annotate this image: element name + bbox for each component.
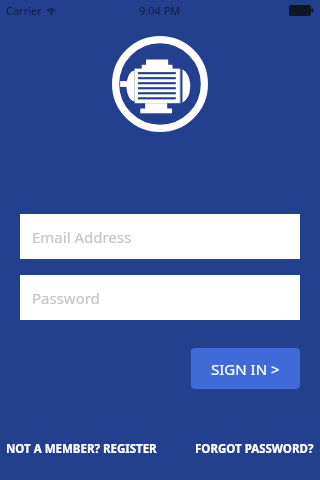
button[interactable]: Email Address [20, 214, 300, 259]
staticText: FORGOT PASSWORD? [195, 441, 314, 457]
staticText: 9:04 PM [139, 3, 181, 18]
staticText: NOT A MEMBER? REGISTER [6, 441, 157, 457]
other: Motor logo [112, 36, 208, 132]
staticText: SIGN IN > [211, 359, 280, 379]
button[interactable]: NOT A MEMBER? REGISTER [0, 437, 161, 461]
staticText: Carrier [6, 3, 42, 18]
staticText: Email Address [32, 227, 132, 247]
button[interactable]: Password [20, 275, 300, 320]
button[interactable]: SIGN IN > [191, 348, 300, 389]
button[interactable]: FORGOT PASSWORD? [191, 437, 320, 461]
staticText: Password [32, 288, 100, 308]
